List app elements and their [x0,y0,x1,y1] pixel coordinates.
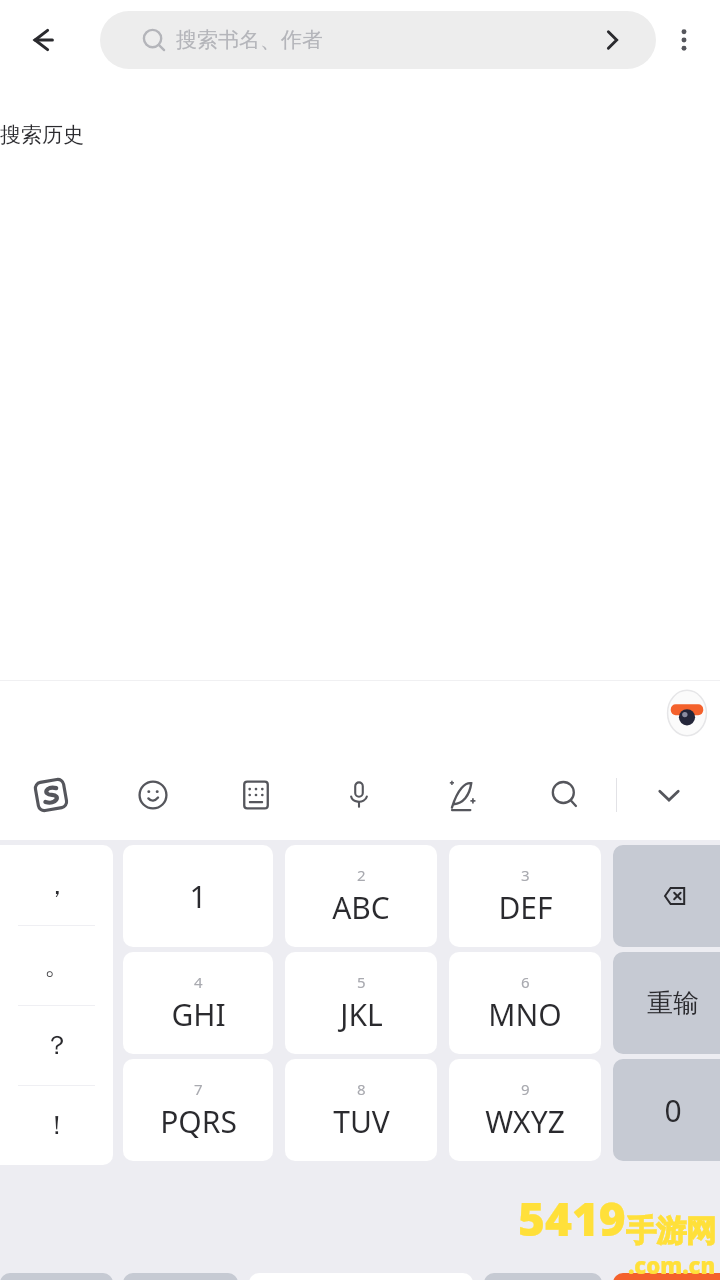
button[interactable]: 重输 [613,952,720,1054]
button[interactable]: Sogou assistant [660,686,714,740]
button[interactable]: Emoji [102,750,204,840]
button[interactable]: 符 [0,1273,113,1280]
staticText: DEF [498,887,553,928]
staticText: .com.cn [628,1250,716,1280]
staticText: TUV [333,1101,390,1142]
staticText: 重输 [647,987,699,1020]
staticText: MNO [488,994,562,1035]
staticText: 搜索历史 [0,122,84,148]
button[interactable]: Hide keyboard [617,750,720,840]
button[interactable]: 0 [613,1059,720,1161]
staticText: PQRS [160,1101,237,1142]
button[interactable]: ？ [0,1006,113,1085]
staticText: ！ [44,1109,70,1142]
button[interactable]: 5 [285,952,437,1054]
staticText: 4 [194,972,203,992]
staticText: 搜索书名、作者 [176,27,323,53]
staticText: 5 [357,972,366,992]
staticText: 9 [521,1079,530,1099]
button[interactable]: 。 [0,926,113,1005]
staticText: 8 [357,1079,366,1099]
button[interactable]: 搜索书名、作者 [100,11,656,69]
staticText: 7 [194,1079,203,1099]
button[interactable]: Submit search [590,18,634,62]
staticText: 0 [664,1090,682,1131]
button[interactable]: Search [513,750,616,840]
button[interactable]: More options [656,12,712,68]
staticText: 3 [521,865,530,885]
staticText: ABC [332,887,390,928]
button[interactable]: Handwriting [410,750,513,840]
button[interactable]: 6 [449,952,601,1054]
button[interactable]: ！ [0,1086,113,1165]
button[interactable]: 4 [123,952,273,1054]
staticText: GHI [171,994,226,1035]
staticText: WXYZ [485,1101,565,1142]
button[interactable]: 1 [123,845,273,947]
button[interactable]: 2 [285,845,437,947]
staticText: JKL [340,994,383,1035]
staticText: 。 [44,949,70,982]
button[interactable]: ， [0,845,113,925]
button[interactable]: 8 [285,1059,437,1161]
button[interactable]: 3 [449,845,601,947]
button[interactable]: Keyboard layout [204,750,307,840]
staticText: ， [44,869,70,902]
staticText: 1 [189,876,207,917]
staticText: 手游网 [626,1212,716,1250]
button[interactable]: 7 [123,1059,273,1161]
button[interactable]: Back [14,10,74,70]
staticText: 6 [521,972,530,992]
button[interactable]: 搜索 [613,1273,720,1280]
button[interactable]: Switch Chinese English [484,1273,602,1280]
button[interactable] [613,845,720,947]
staticText: 5419 [518,1187,626,1250]
button[interactable]: Sogou logo [0,750,102,840]
staticText: ？ [44,1029,70,1062]
button[interactable]: 123 [123,1273,238,1280]
button[interactable]: Voice input [307,750,410,840]
button[interactable]: 9 [449,1059,601,1161]
staticText: 2 [357,865,366,885]
